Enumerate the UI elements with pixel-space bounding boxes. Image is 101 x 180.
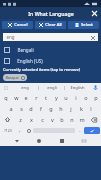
staticText: x xyxy=(30,116,33,123)
button[interactable]: u xyxy=(61,92,71,103)
button[interactable]: t xyxy=(41,92,51,103)
staticText: ?123 xyxy=(4,128,12,133)
button[interactable]: l xyxy=(86,103,96,114)
staticText: In What Language xyxy=(28,10,74,17)
button[interactable]: English xyxy=(65,83,90,92)
button[interactable]: f xyxy=(36,103,46,114)
staticText: b xyxy=(60,116,64,123)
staticText: r xyxy=(35,94,38,101)
staticText: eng xyxy=(6,34,15,40)
staticText: g xyxy=(49,105,53,112)
button[interactable]: k xyxy=(76,103,86,114)
button[interactable]: m xyxy=(77,114,87,125)
button[interactable]: g xyxy=(46,103,56,114)
button[interactable]: e xyxy=(21,92,31,103)
button[interactable]: Cancel xyxy=(2,21,33,29)
staticText: l xyxy=(90,105,92,112)
staticText: p xyxy=(94,94,98,101)
staticText: y xyxy=(55,94,58,101)
button[interactable]: Emoji xyxy=(24,125,33,136)
button[interactable]: eng xyxy=(3,33,98,41)
button[interactable]: Keyboard xyxy=(79,136,89,146)
button[interactable]: p xyxy=(91,92,101,103)
button[interactable]: a xyxy=(5,103,16,114)
button[interactable]: ?123 xyxy=(1,125,15,136)
button[interactable]: o xyxy=(81,92,91,103)
button[interactable]: s xyxy=(16,103,26,114)
button[interactable]: Clear text xyxy=(89,34,96,41)
staticText: f xyxy=(40,105,42,112)
staticText: w xyxy=(14,94,19,101)
staticText: u xyxy=(64,94,68,101)
staticText: i xyxy=(75,94,77,101)
button[interactable]: Keyboard settings xyxy=(0,83,12,92)
staticText: d xyxy=(29,105,33,112)
button[interactable]: Shift xyxy=(0,114,15,125)
button[interactable]: r xyxy=(31,92,41,103)
staticText: . xyxy=(79,127,81,134)
staticText: h xyxy=(59,105,63,112)
staticText: Basque xyxy=(5,75,19,80)
staticText: Clear All xyxy=(45,22,62,28)
button[interactable]: , xyxy=(15,125,24,136)
staticText: z xyxy=(19,116,22,123)
button[interactable]: x xyxy=(26,114,37,125)
button[interactable]: y xyxy=(51,92,61,103)
button[interactable]: Home xyxy=(34,136,44,146)
button[interactable]: b xyxy=(57,114,67,125)
staticText: engli xyxy=(47,85,57,91)
button[interactable]: Enter xyxy=(84,127,100,134)
button[interactable]: Select xyxy=(68,21,99,29)
button[interactable]: z xyxy=(15,114,26,125)
button[interactable]: engli xyxy=(39,83,64,92)
staticText: , xyxy=(19,127,21,134)
button[interactable]: . xyxy=(75,125,84,136)
staticText: j xyxy=(70,105,72,112)
staticText: t xyxy=(45,94,47,101)
button[interactable]: Clear All xyxy=(35,21,66,29)
staticText: m xyxy=(79,116,85,123)
staticText: Bengali xyxy=(17,47,34,53)
staticText: Select xyxy=(81,22,93,28)
staticText: v xyxy=(51,116,54,123)
button[interactable]: w xyxy=(11,92,21,103)
button[interactable]: Voice input xyxy=(90,83,101,92)
staticText: o xyxy=(84,94,88,101)
button[interactable]: eng xyxy=(12,83,38,92)
button[interactable]: h xyxy=(56,103,66,114)
staticText: eng xyxy=(21,85,29,91)
staticText: k xyxy=(80,105,83,112)
staticText: English (US) xyxy=(17,58,43,64)
staticText: q xyxy=(4,94,8,101)
staticText: s xyxy=(20,105,23,112)
button[interactable]: c xyxy=(37,114,47,125)
button[interactable]: i xyxy=(71,92,81,103)
button[interactable]: q xyxy=(0,92,11,103)
button[interactable]: English (US) xyxy=(0,55,101,66)
staticText: e xyxy=(24,94,28,101)
button[interactable]: Backspace xyxy=(87,114,101,125)
button[interactable]: Close xyxy=(90,9,98,17)
staticText: Cancel xyxy=(14,22,28,28)
button[interactable]: Recents xyxy=(57,136,67,146)
staticText: Currently selected items (tap to remove) xyxy=(3,67,80,72)
staticText: English xyxy=(70,85,85,91)
button[interactable]: n xyxy=(67,114,77,125)
button[interactable]: Back xyxy=(12,136,22,146)
staticText: n xyxy=(70,116,74,123)
button[interactable]: d xyxy=(26,103,36,114)
button[interactable]: v xyxy=(47,114,57,125)
staticText: a xyxy=(9,105,13,112)
button[interactable]: j xyxy=(66,103,76,114)
button[interactable]: Bengali xyxy=(0,44,101,55)
button[interactable]: Basque xyxy=(3,74,27,81)
staticText: c xyxy=(41,116,44,123)
